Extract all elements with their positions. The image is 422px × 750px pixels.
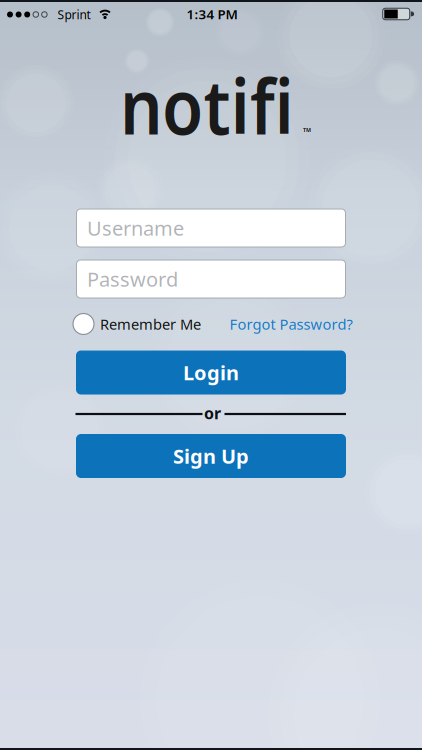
- button[interactable]: Password: [76, 259, 346, 298]
- button[interactable]: Forgot Password?: [229, 314, 352, 334]
- staticText: Remember Me: [100, 314, 201, 334]
- staticText: Username: [87, 215, 184, 241]
- staticText: or: [204, 402, 221, 424]
- staticText: i: [284, 54, 306, 155]
- staticText: Login: [183, 359, 239, 386]
- staticText: Sprint: [57, 6, 90, 22]
- button[interactable]: Remember Me: [73, 313, 201, 334]
- button[interactable]: Sign Up: [76, 434, 346, 478]
- staticText: 1:34 PM: [186, 5, 237, 23]
- staticText: Password: [87, 266, 178, 292]
- button[interactable]: Login: [76, 350, 346, 394]
- staticText: TM: [303, 126, 311, 134]
- staticText: notif: [108, 54, 284, 155]
- staticText: Sign Up: [173, 443, 249, 469]
- button[interactable]: Username: [76, 208, 346, 247]
- staticText: Forgot Password?: [229, 314, 352, 334]
